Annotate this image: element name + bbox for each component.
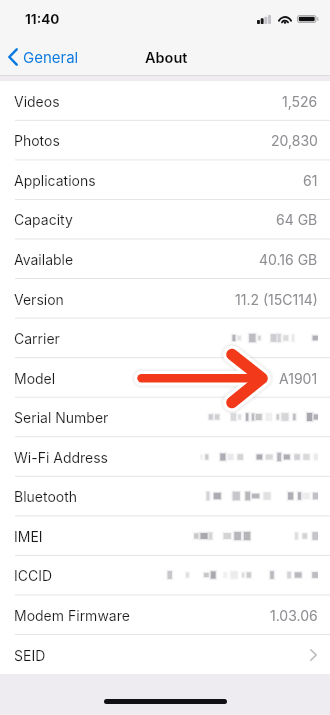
- staticText: Photos: [14, 132, 60, 149]
- staticText: 64 GB: [276, 211, 318, 228]
- button[interactable]: IMEI: [0, 516, 330, 556]
- staticText: 1.03.06: [270, 607, 318, 624]
- button[interactable]: Videos: [0, 81, 330, 121]
- button[interactable]: Capacity: [0, 199, 330, 239]
- staticText: About: [145, 49, 188, 67]
- staticText: Model: [14, 370, 56, 387]
- staticText: Videos: [14, 93, 60, 110]
- button[interactable]: Bluetooth: [0, 476, 330, 516]
- button[interactable]: Applications: [0, 160, 330, 200]
- staticText: Version: [14, 291, 64, 308]
- staticText: 11:40: [25, 11, 60, 27]
- staticText: 11.2 (15C114): [235, 291, 318, 308]
- staticText: A1901: [279, 370, 318, 387]
- button[interactable]: Modem Firmware: [0, 595, 330, 635]
- other: Annotation arrow pointing to Model: [0, 0, 330, 715]
- staticText: Capacity: [14, 211, 73, 228]
- staticText: Serial Number: [14, 409, 109, 426]
- button[interactable]: Carrier: [0, 318, 330, 358]
- button[interactable]: Model: [0, 358, 330, 398]
- staticText: Carrier: [14, 330, 60, 347]
- button[interactable]: General: [0, 43, 89, 71]
- button[interactable]: Serial Number: [0, 397, 330, 437]
- staticText: Modem Firmware: [14, 607, 130, 624]
- staticText: Bluetooth: [14, 488, 78, 505]
- button[interactable]: Available: [0, 239, 330, 279]
- button[interactable]: Photos: [0, 120, 330, 160]
- staticText: Applications: [14, 172, 96, 189]
- staticText: Available: [14, 251, 74, 268]
- staticText: 40.16 GB: [259, 251, 318, 268]
- button[interactable]: Version: [0, 279, 330, 319]
- staticText: 1,526: [282, 93, 318, 110]
- button[interactable]: ICCID: [0, 555, 330, 595]
- staticText: ICCID: [14, 567, 53, 584]
- staticText: SEID: [14, 647, 46, 664]
- staticText: Wi-Fi Address: [14, 449, 109, 466]
- button[interactable]: Wi-Fi Address: [0, 437, 330, 477]
- staticText: 61: [303, 172, 318, 189]
- staticText: IMEI: [14, 528, 43, 545]
- staticText: General: [23, 48, 79, 66]
- button[interactable]: SEID: [0, 635, 330, 675]
- staticText: 20,830: [271, 132, 318, 149]
